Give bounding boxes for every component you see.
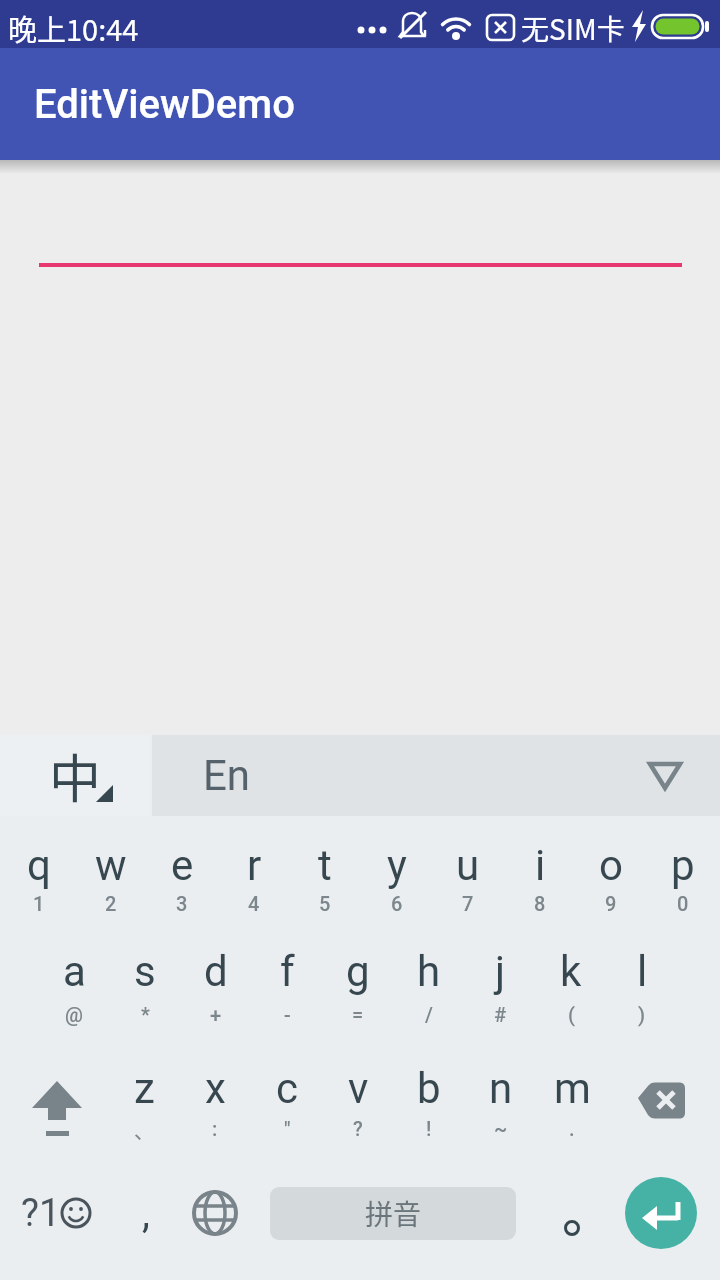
button[interactable]: z (108, 1035, 180, 1148)
button[interactable]: y (361, 816, 433, 922)
staticText: d (204, 947, 228, 996)
button[interactable] (39, 205, 682, 267)
button[interactable]: m (536, 1035, 608, 1148)
staticText: ( (568, 1003, 575, 1026)
staticText: ?1 (21, 1191, 61, 1236)
staticText: j (495, 947, 506, 996)
staticText: ! (426, 1117, 432, 1140)
button[interactable]: f (251, 922, 323, 1035)
staticText: 3 (176, 892, 188, 914)
button[interactable] (21, 1035, 93, 1145)
button[interactable]: q (3, 816, 75, 922)
button[interactable]: x (179, 1035, 251, 1148)
button[interactable]: e (146, 816, 218, 922)
staticText: + (210, 1003, 222, 1026)
staticText: " (284, 1117, 291, 1140)
button[interactable]: c (251, 1035, 323, 1148)
button[interactable]: d (180, 922, 252, 1035)
staticText: 1 (33, 892, 45, 914)
button[interactable]: s (109, 922, 181, 1035)
button[interactable]: 拼音 (270, 1187, 516, 1240)
staticText: m (554, 1064, 591, 1113)
staticText: i (535, 841, 546, 890)
staticText: : (212, 1117, 218, 1140)
staticText: p (671, 841, 695, 890)
staticText: w (95, 841, 127, 890)
button[interactable]: j (464, 922, 536, 1035)
button[interactable]: v (322, 1035, 394, 1148)
staticText: / (425, 1003, 433, 1026)
staticText: ? (353, 1117, 363, 1140)
staticText: g (346, 947, 370, 996)
button[interactable]: r (218, 816, 290, 922)
button[interactable]: k (535, 922, 607, 1035)
button[interactable] (542, 1198, 602, 1258)
staticText: x (205, 1064, 226, 1113)
staticText: b (417, 1064, 441, 1113)
staticText: v (348, 1064, 369, 1113)
button[interactable]: n (465, 1035, 537, 1148)
button[interactable]: 中 (0, 735, 150, 816)
staticText: 中 (49, 738, 102, 813)
staticText: q (27, 841, 51, 890)
staticText: 2 (105, 892, 117, 914)
staticText: En (203, 751, 251, 800)
staticText: = (352, 1003, 364, 1026)
staticText: 7 (462, 892, 474, 914)
staticText: 6 (391, 892, 403, 914)
button[interactable]: p (647, 816, 719, 922)
staticText: a (63, 947, 86, 996)
button[interactable]: w (75, 816, 147, 922)
button[interactable]: l (606, 922, 678, 1035)
button[interactable]: b (393, 1035, 465, 1148)
button[interactable]: o (575, 816, 647, 922)
staticText: 拼音 (365, 1193, 422, 1234)
button[interactable] (625, 1080, 697, 1140)
staticText: s (134, 947, 156, 996)
staticText: # (494, 1003, 507, 1026)
button[interactable]: En (152, 735, 302, 816)
staticText: l (637, 947, 648, 996)
button[interactable]: t (289, 816, 361, 922)
staticText: - (284, 1003, 291, 1026)
staticText: 晚上10:44 (8, 7, 139, 49)
staticText: * (141, 1003, 150, 1026)
staticText: @ (65, 1003, 83, 1026)
staticText: 9 (605, 892, 617, 914)
staticText: . (569, 1117, 575, 1140)
staticText: c (276, 1064, 298, 1113)
staticText: ~ (494, 1117, 508, 1140)
staticText: h (417, 947, 441, 996)
staticText: t (318, 841, 332, 890)
staticText: 、 (134, 1116, 154, 1140)
staticText: o (599, 841, 623, 890)
button[interactable]: a (38, 922, 110, 1035)
staticText: y (387, 841, 407, 890)
button[interactable]: i (504, 816, 576, 922)
staticText: 4 (248, 892, 260, 914)
button[interactable] (620, 756, 710, 802)
staticText: ) (638, 1003, 646, 1026)
staticText: 无SIM卡 (521, 8, 625, 49)
staticText: f (280, 947, 295, 996)
button[interactable]: ?1 (15, 1183, 100, 1243)
staticText: 0 (677, 892, 689, 914)
staticText: n (489, 1064, 513, 1113)
staticText: e (171, 841, 194, 890)
staticText: u (456, 841, 480, 890)
staticText: 5 (319, 892, 331, 914)
staticText: , (142, 1190, 150, 1237)
staticText: 8 (534, 892, 546, 914)
staticText: EditViewDemo (34, 81, 295, 128)
button[interactable]: h (393, 922, 465, 1035)
button[interactable] (625, 1177, 697, 1249)
staticText: z (134, 1064, 155, 1113)
button[interactable] (180, 1178, 250, 1248)
button[interactable]: u (432, 816, 504, 922)
button[interactable]: , (116, 1185, 176, 1241)
staticText: r (247, 841, 262, 890)
button[interactable]: g (322, 922, 394, 1035)
staticText: k (560, 947, 582, 996)
